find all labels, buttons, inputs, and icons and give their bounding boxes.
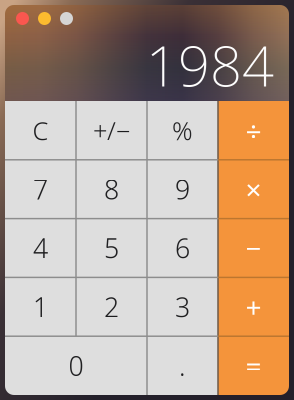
- staticText: C: [32, 114, 48, 147]
- staticText: 1: [33, 289, 48, 324]
- staticText: +: [245, 288, 261, 325]
- staticText: 7: [33, 171, 48, 207]
- staticText: 9: [175, 171, 190, 207]
- button[interactable]: 1: [5, 277, 76, 336]
- button[interactable]: 6: [147, 219, 218, 277]
- button[interactable]: +/−: [76, 101, 147, 160]
- button[interactable]: ÷: [218, 101, 289, 160]
- button[interactable]: +: [218, 277, 289, 336]
- button[interactable]: Zoom: [60, 12, 73, 25]
- staticText: 4: [33, 230, 48, 266]
- button[interactable]: −: [218, 219, 289, 277]
- button[interactable]: 7: [5, 160, 76, 219]
- staticText: %: [172, 114, 193, 147]
- button[interactable]: C: [5, 101, 76, 160]
- button[interactable]: 4: [5, 219, 76, 277]
- button[interactable]: 0: [5, 336, 147, 395]
- staticText: ÷: [245, 112, 261, 149]
- button[interactable]: Minimize: [38, 12, 51, 25]
- staticText: =: [245, 347, 261, 384]
- staticText: 6: [175, 230, 190, 266]
- button[interactable]: 9: [147, 160, 218, 219]
- button[interactable]: 5: [76, 219, 147, 277]
- button[interactable]: ×: [218, 160, 289, 219]
- button[interactable]: %: [147, 101, 218, 160]
- button[interactable]: =: [218, 336, 289, 395]
- button[interactable]: Close: [16, 12, 29, 25]
- staticText: .: [179, 348, 186, 383]
- staticText: ×: [245, 171, 261, 208]
- staticText: 5: [104, 230, 119, 266]
- button[interactable]: 8: [76, 160, 147, 219]
- staticText: 3: [175, 289, 190, 324]
- staticText: 8: [104, 171, 119, 207]
- staticText: 2: [104, 289, 119, 324]
- staticText: 1984: [146, 28, 274, 102]
- button[interactable]: .: [147, 336, 218, 395]
- button[interactable]: 2: [76, 277, 147, 336]
- staticText: +/−: [93, 114, 130, 147]
- staticText: −: [245, 229, 261, 267]
- staticText: 0: [68, 348, 83, 383]
- button[interactable]: 3: [147, 277, 218, 336]
